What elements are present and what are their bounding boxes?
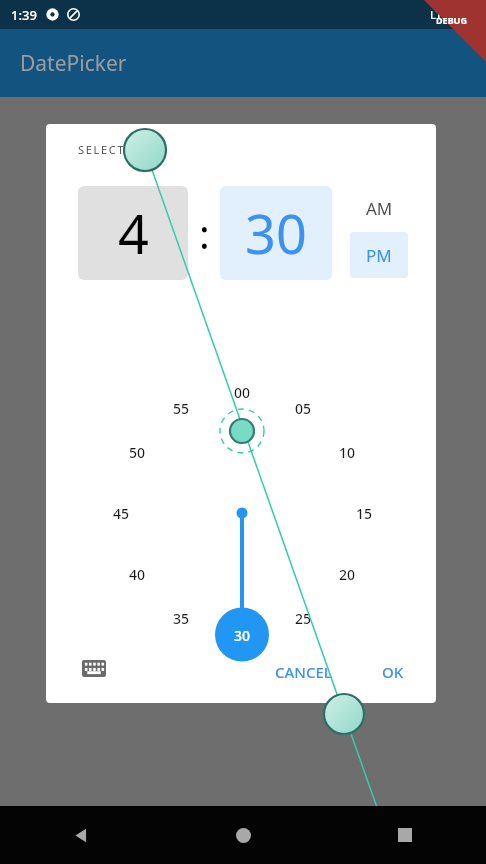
button[interactable]: Back (0, 806, 162, 864)
button[interactable]: Recent apps (324, 806, 486, 864)
staticText: 50 (129, 443, 146, 462)
button[interactable]: 40 (120, 563, 154, 585)
staticText: 25 (295, 609, 312, 628)
staticText: 30 (234, 626, 251, 645)
button[interactable]: 20 (330, 563, 364, 585)
button[interactable]: Home (162, 806, 324, 864)
staticText: DEBUG (436, 14, 467, 26)
staticText: 30 (245, 196, 307, 270)
staticText: 55 (173, 399, 190, 418)
button[interactable]: 05 (286, 397, 320, 419)
staticText: SELECT TIME (78, 142, 163, 157)
staticText: OK (382, 662, 404, 682)
button[interactable]: 25 (286, 607, 320, 629)
staticText: 1:39 (11, 6, 37, 24)
button[interactable]: 30 (220, 186, 332, 280)
staticText: 15 (356, 504, 373, 523)
button[interactable]: 10 (330, 441, 364, 463)
staticText: 40 (129, 565, 146, 584)
staticText: PM (366, 244, 392, 267)
button[interactable]: AM (350, 186, 408, 230)
button[interactable]: OK (366, 654, 420, 690)
staticText: 05 (295, 399, 312, 418)
button[interactable]: 50 (120, 441, 154, 463)
button[interactable]: 15 (347, 502, 381, 524)
staticText: AM (366, 197, 393, 220)
button[interactable]: Switch to text input (74, 648, 114, 688)
staticText: 4 (118, 196, 149, 270)
staticText: 45 (113, 504, 130, 523)
staticText: 20 (339, 565, 356, 584)
button[interactable]: CANCEL (258, 654, 348, 690)
staticText: 10 (339, 443, 356, 462)
staticText: DatePicker (20, 49, 127, 78)
button[interactable]: 45 (104, 502, 138, 524)
staticText: CANCEL (275, 662, 332, 682)
button[interactable]: 30 (225, 624, 259, 646)
staticText: 00 (234, 383, 251, 402)
button[interactable]: 00 (225, 381, 259, 403)
button[interactable]: 35 (164, 607, 198, 629)
button[interactable]: 55 (164, 397, 198, 419)
staticText: : (199, 206, 210, 260)
button[interactable]: PM (350, 232, 408, 278)
button[interactable]: 4 (78, 186, 188, 280)
staticText: 35 (173, 609, 190, 628)
staticText: LTE (430, 7, 448, 22)
